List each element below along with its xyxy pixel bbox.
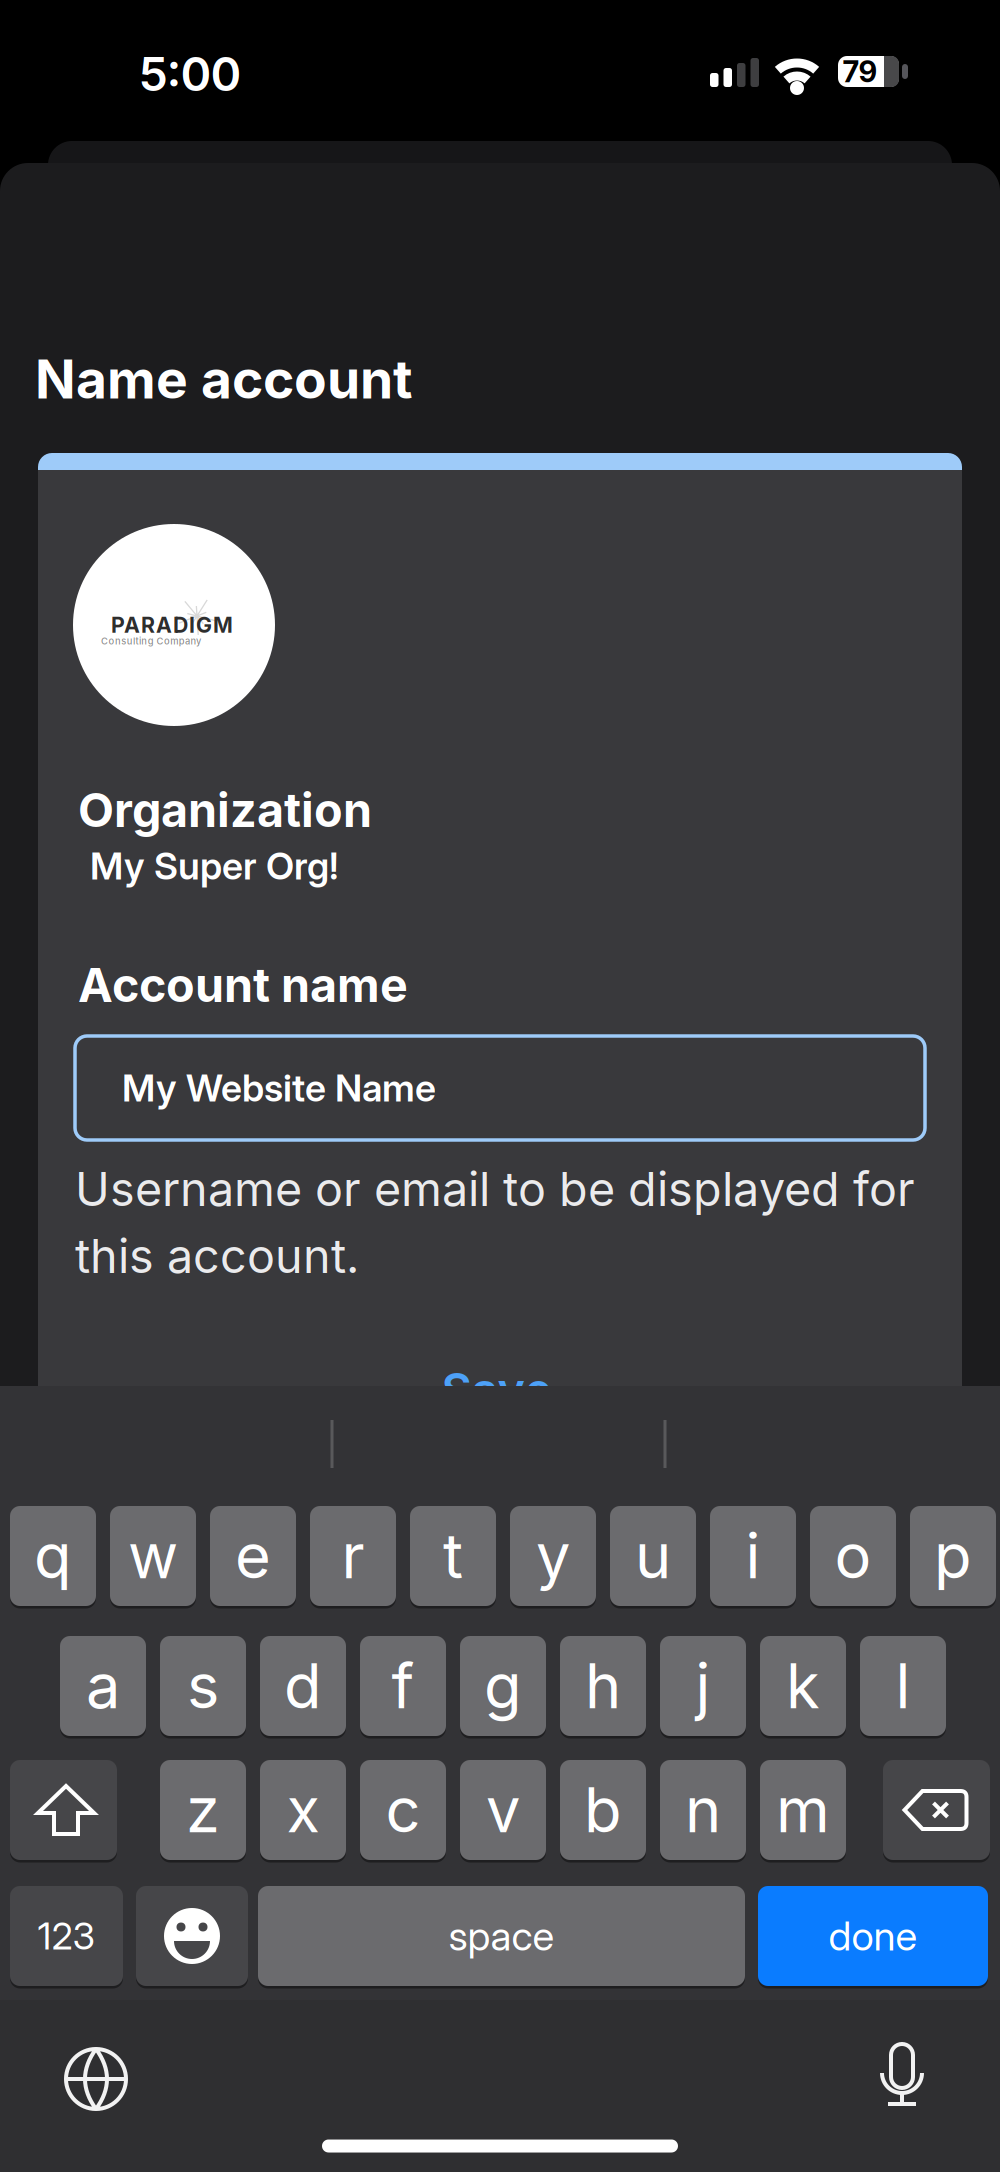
staticText: w <box>128 1520 178 1592</box>
staticText: PARADIGM <box>111 612 233 638</box>
button[interactable]: e <box>210 1504 296 1607</box>
staticText: p <box>934 1520 972 1592</box>
staticText: m <box>776 1774 830 1846</box>
button[interactable]: v <box>460 1758 546 1861</box>
button[interactable]: Delete <box>883 1758 990 1861</box>
button[interactable]: done <box>758 1884 988 1987</box>
button[interactable]: Save <box>397 1360 597 1420</box>
staticText: j <box>695 1650 710 1722</box>
staticText: b <box>584 1774 622 1846</box>
button[interactable]: k <box>760 1634 846 1737</box>
staticText: k <box>786 1650 820 1722</box>
button[interactable]: z <box>160 1758 246 1861</box>
button[interactable]: x <box>260 1758 346 1861</box>
button[interactable]: d <box>260 1634 346 1737</box>
button[interactable]: j <box>660 1634 746 1737</box>
button[interactable]: q <box>10 1504 96 1607</box>
button[interactable]: Dictation <box>864 2041 940 2117</box>
button[interactable]: Shift <box>10 1758 117 1861</box>
staticText: My Website Name <box>122 1066 436 1110</box>
staticText: y <box>536 1520 570 1592</box>
staticText: i <box>745 1520 760 1592</box>
staticText: s <box>187 1650 219 1722</box>
button[interactable]: w <box>110 1504 196 1607</box>
staticText: done <box>828 1912 917 1960</box>
staticText: l <box>895 1650 910 1722</box>
button[interactable]: f <box>360 1634 446 1737</box>
staticText: Save <box>441 1362 552 1418</box>
staticText: q <box>34 1520 72 1592</box>
button[interactable]: b <box>560 1758 646 1861</box>
button[interactable]: y <box>510 1504 596 1607</box>
staticText: r <box>341 1520 364 1592</box>
button[interactable]: s <box>160 1634 246 1737</box>
button[interactable]: h <box>560 1634 646 1737</box>
staticText: 123 <box>37 1914 95 1958</box>
staticText: Consulting Company <box>101 635 201 646</box>
staticText: z <box>186 1774 220 1846</box>
staticText: Account name <box>78 957 408 1013</box>
staticText: Username or email to be displayed for <box>75 1161 915 1217</box>
staticText: space <box>448 1912 554 1960</box>
staticText: g <box>484 1650 522 1722</box>
staticText: a <box>86 1650 120 1722</box>
button[interactable]: 123 <box>10 1884 123 1987</box>
button[interactable]: o <box>810 1504 896 1607</box>
staticText: n <box>685 1774 721 1846</box>
button[interactable]: space <box>258 1884 745 1987</box>
button[interactable]: n <box>660 1758 746 1861</box>
button[interactable]: a <box>60 1634 146 1737</box>
button[interactable]: i <box>710 1504 796 1607</box>
button[interactable]: r <box>310 1504 396 1607</box>
button[interactable]: l <box>860 1634 946 1737</box>
button[interactable]: t <box>410 1504 496 1607</box>
staticText: o <box>834 1520 871 1592</box>
button[interactable]: Account name <box>75 1036 925 1140</box>
button[interactable]: m <box>760 1758 846 1861</box>
button[interactable]: Emoji <box>136 1884 248 1987</box>
staticText: 5:00 <box>138 46 241 102</box>
staticText: t <box>443 1520 463 1592</box>
staticText: v <box>486 1774 520 1846</box>
staticText: h <box>585 1650 621 1722</box>
staticText: f <box>391 1650 414 1722</box>
staticText: My Super Org! <box>90 844 339 888</box>
staticText: this account. <box>75 1228 359 1284</box>
staticText: Name account <box>35 347 413 410</box>
button[interactable]: c <box>360 1758 446 1861</box>
staticText: Organization <box>78 782 372 838</box>
staticText: x <box>286 1774 319 1846</box>
staticText: 79 <box>842 54 877 89</box>
button[interactable]: u <box>610 1504 696 1607</box>
button[interactable]: p <box>910 1504 996 1607</box>
staticText: c <box>385 1774 420 1846</box>
staticText: e <box>235 1520 271 1592</box>
button[interactable]: g <box>460 1634 546 1737</box>
button[interactable]: Next keyboard <box>58 2041 134 2117</box>
staticText: u <box>635 1520 671 1592</box>
staticText: d <box>284 1650 322 1722</box>
